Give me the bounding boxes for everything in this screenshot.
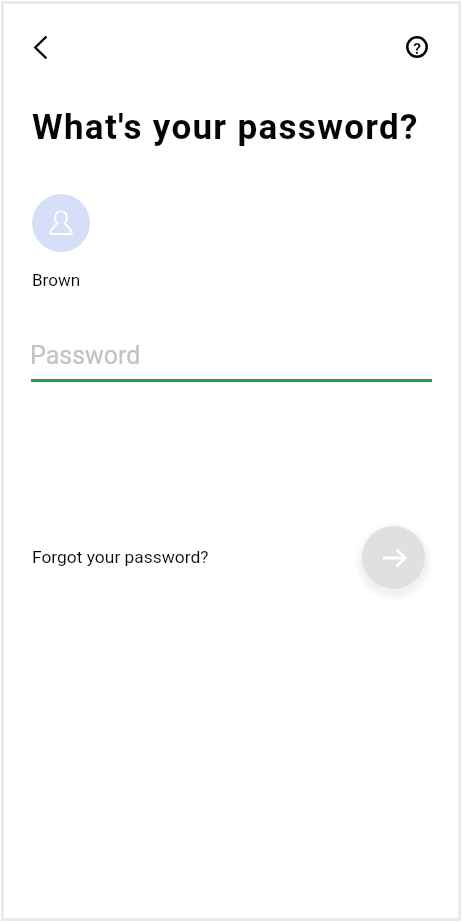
staticText: ?	[411, 40, 423, 58]
button[interactable]: Continue	[362, 526, 425, 589]
staticText: Password	[30, 341, 141, 370]
button[interactable]: Forgot your password?	[32, 547, 209, 567]
button[interactable]: Password	[31, 334, 432, 382]
button[interactable]: Help	[393, 23, 441, 71]
staticText: What's your password?	[32, 107, 419, 148]
button[interactable]: Account Brown	[32, 194, 90, 252]
staticText: Brown	[32, 270, 81, 290]
staticText: Forgot your password?	[32, 547, 209, 567]
button[interactable]: Back	[12, 24, 60, 72]
